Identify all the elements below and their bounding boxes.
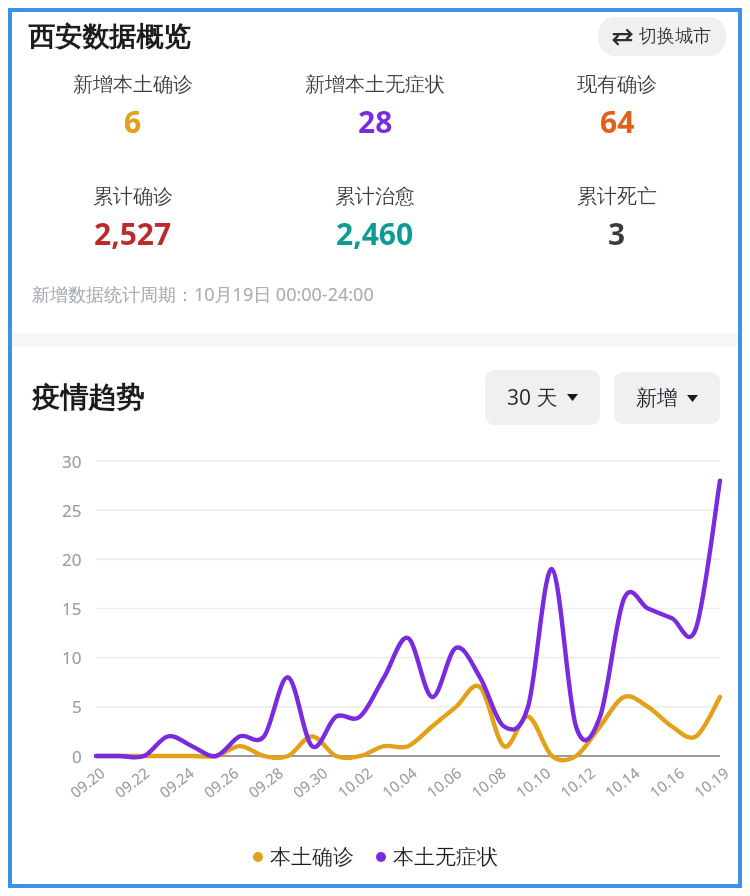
staticText: 累计死亡 <box>577 184 657 209</box>
staticText: 本土无症状 <box>393 844 498 870</box>
staticText: 现有确诊 <box>577 72 657 97</box>
staticText: 6 <box>124 101 142 142</box>
staticText: 2,460 <box>336 213 414 254</box>
staticText: 3 <box>608 213 626 254</box>
staticText: 西安数据概览 <box>28 20 190 54</box>
staticText: 累计治愈 <box>335 184 415 209</box>
button[interactable]: Switch city <box>598 17 726 56</box>
button[interactable]: 新增本土确诊 <box>12 72 254 142</box>
staticText: 新增 <box>636 385 678 411</box>
button[interactable]: 30 天 <box>485 370 600 425</box>
button[interactable]: 累计治愈 <box>254 184 496 254</box>
other: Switch city <box>613 30 632 44</box>
button[interactable]: 累计确诊 <box>12 184 254 254</box>
staticText: 疫情趋势 <box>32 380 144 415</box>
button[interactable]: 累计死亡 <box>496 184 738 254</box>
staticText: 累计确诊 <box>93 184 173 209</box>
button[interactable]: 新增 <box>614 372 720 424</box>
button[interactable]: 本土无症状 <box>374 842 500 872</box>
staticText: 新增数据统计周期：10月19日 00:00-24:00 <box>32 282 374 307</box>
staticText: 30 天 <box>507 383 558 412</box>
button[interactable]: 新增本土无症状 <box>254 72 496 142</box>
button[interactable]: 本土确诊 <box>251 842 356 872</box>
staticText: 切换城市 <box>639 25 711 48</box>
staticText: 64 <box>600 101 635 142</box>
staticText: 新增本土无症状 <box>305 72 445 97</box>
staticText: 28 <box>358 101 393 142</box>
staticText: 本土确诊 <box>270 844 354 870</box>
staticText: 新增本土确诊 <box>73 72 193 97</box>
button[interactable]: 现有确诊 <box>496 72 738 142</box>
staticText: 2,527 <box>94 213 172 254</box>
